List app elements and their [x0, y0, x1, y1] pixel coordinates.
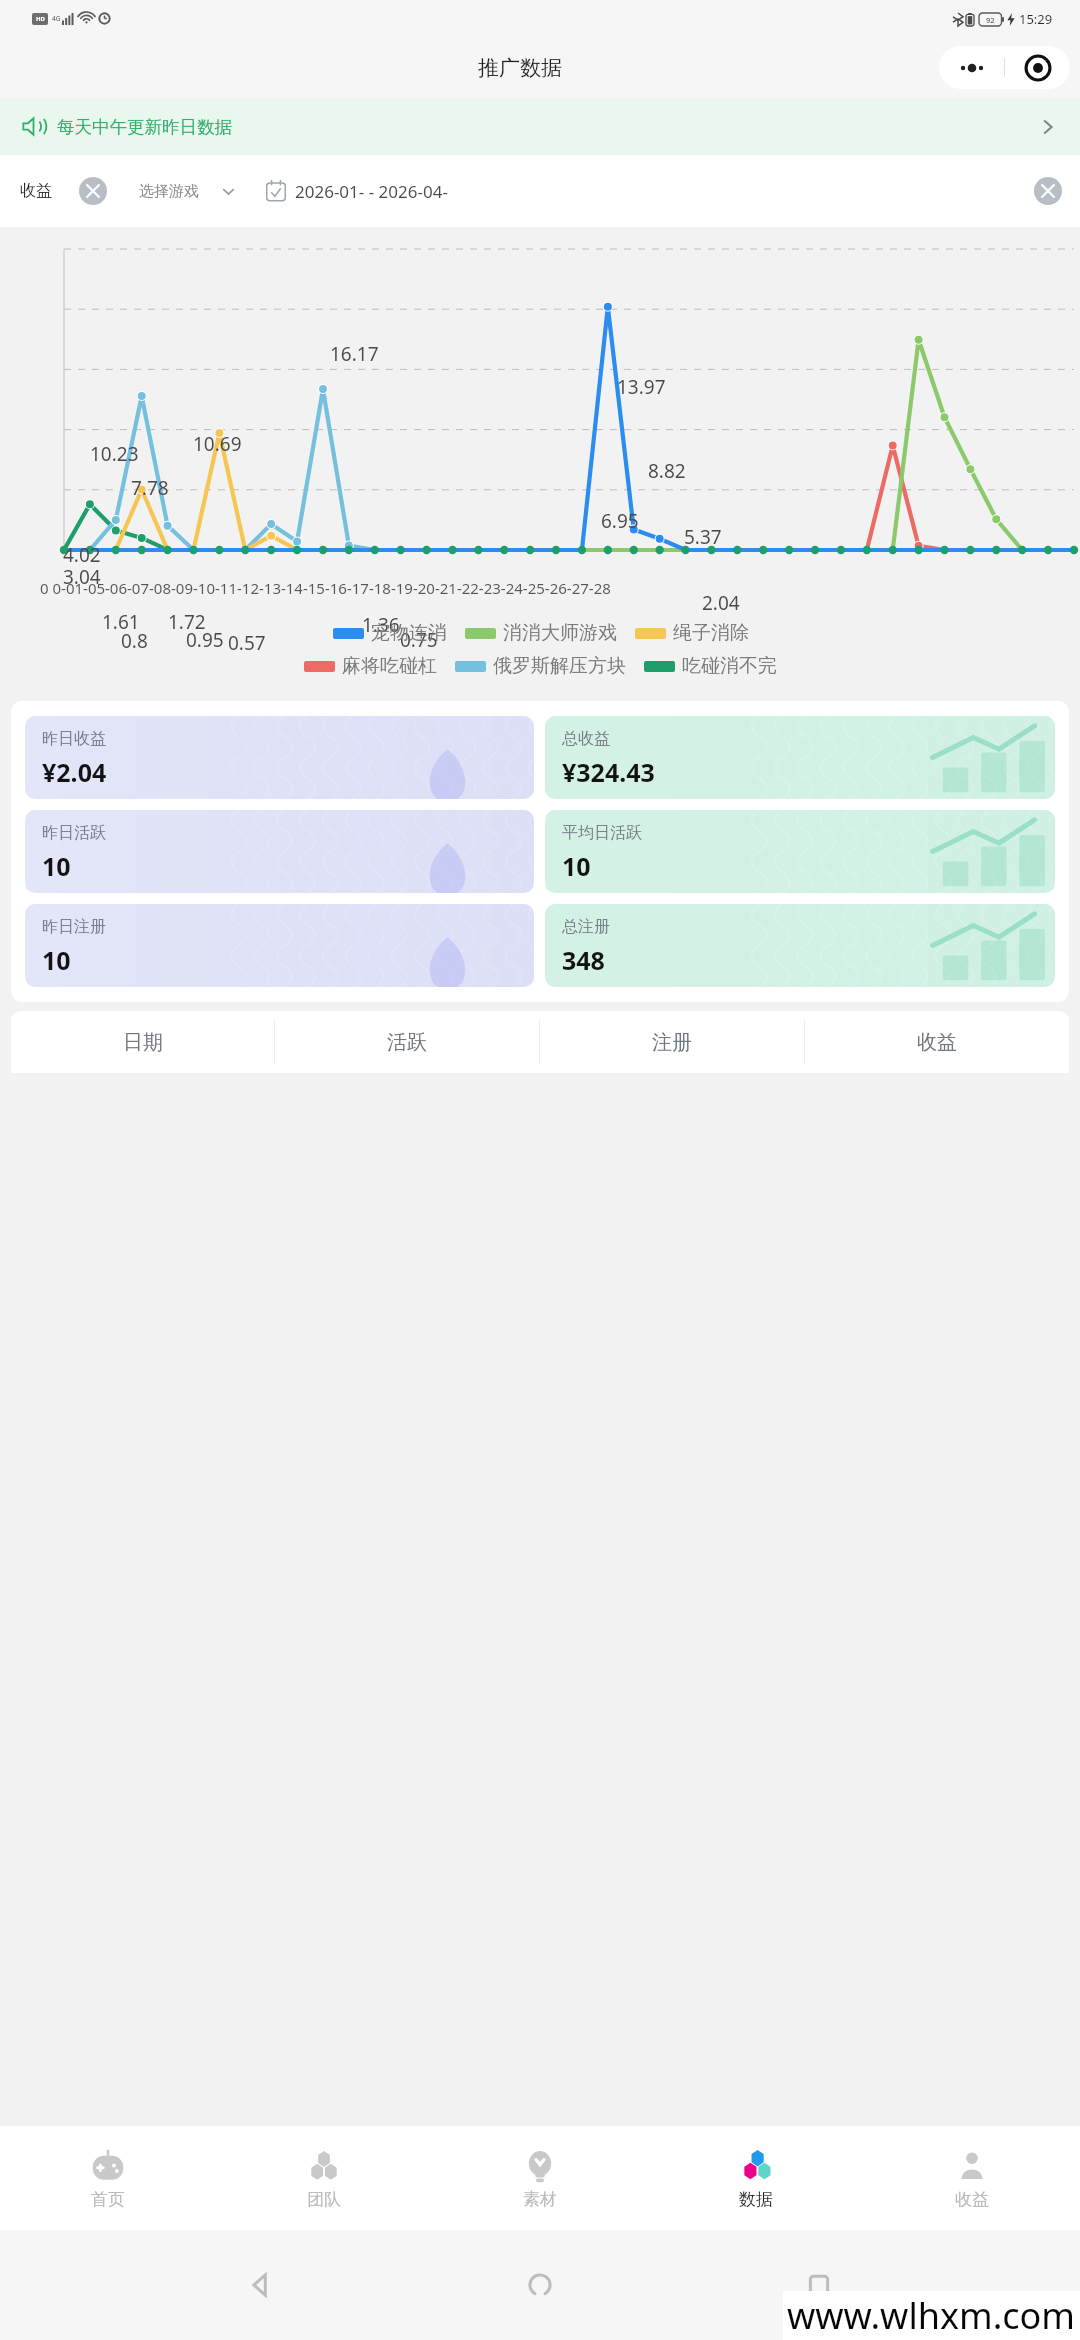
- staticText: 昨日注册: [42, 917, 106, 937]
- button[interactable]: Target: [1005, 46, 1070, 89]
- staticText: 1.61: [102, 609, 140, 635]
- staticText: 2.04: [702, 590, 740, 616]
- staticText: 总注册: [562, 917, 610, 937]
- staticText: 数据: [739, 2189, 773, 2210]
- staticText: 麻将吃碰杠: [342, 654, 437, 678]
- button[interactable]: 吃碰消不完: [644, 654, 777, 678]
- staticText: 1.72: [168, 609, 206, 635]
- staticText: 昨日收益: [42, 729, 106, 749]
- button[interactable]: 收益: [7, 165, 120, 217]
- staticText: 收益: [20, 181, 52, 201]
- button[interactable]: 活跃: [275, 1011, 539, 1073]
- staticText: 0.75: [400, 627, 438, 653]
- button[interactable]: Home: [522, 2267, 558, 2303]
- staticText: 8.82: [648, 458, 686, 484]
- staticText: 日期: [123, 1030, 163, 1055]
- button[interactable]: 团队: [216, 2126, 432, 2230]
- staticText: www.wlhxm.com: [787, 2291, 1076, 2340]
- staticText: 推广数据: [478, 55, 562, 81]
- button[interactable]: 俄罗斯解压方块: [455, 654, 626, 678]
- staticText: 0.8: [121, 628, 148, 654]
- button[interactable]: 昨日活跃: [25, 810, 534, 893]
- button[interactable]: 宠物连消: [333, 621, 447, 645]
- staticText: 收益: [917, 1030, 957, 1055]
- button[interactable]: 注册: [540, 1011, 804, 1073]
- staticText: 收益: [955, 2189, 989, 2210]
- button[interactable]: 收益: [805, 1011, 1069, 1073]
- staticText: 7.78: [131, 475, 169, 501]
- staticText: 2026-01- - 2026-04-: [295, 180, 448, 203]
- staticText: 绳子消除: [673, 621, 749, 645]
- staticText: 0.95: [186, 627, 224, 653]
- staticText: 俄罗斯解压方块: [493, 654, 626, 678]
- button[interactable]: Clear: [79, 177, 107, 205]
- button[interactable]: 消消大师游戏: [465, 621, 617, 645]
- staticText: 首页: [91, 2189, 125, 2210]
- staticText: 10: [562, 849, 591, 883]
- button[interactable]: 总收益: [545, 716, 1055, 799]
- staticText: 注册: [652, 1030, 692, 1055]
- staticText: 10.23: [90, 441, 139, 467]
- button[interactable]: 首页: [0, 2126, 216, 2230]
- button[interactable]: 麻将吃碰杠: [304, 654, 437, 678]
- staticText: 92: [986, 15, 995, 25]
- button[interactable]: Clear: [1034, 177, 1062, 205]
- staticText: 昨日活跃: [42, 823, 106, 843]
- staticText: 团队: [307, 2189, 341, 2210]
- button[interactable]: 2026-01- - 2026-04-: [254, 165, 1073, 217]
- staticText: 15:29: [1019, 10, 1053, 28]
- staticText: HD: [36, 15, 45, 23]
- staticText: 4G: [52, 14, 61, 23]
- staticText: 选择游戏: [139, 182, 199, 201]
- staticText: 活跃: [387, 1030, 427, 1055]
- button[interactable]: 日期: [11, 1011, 274, 1073]
- staticText: 1.36: [362, 612, 400, 638]
- staticText: 10: [42, 849, 71, 883]
- button[interactable]: 绳子消除: [635, 621, 749, 645]
- button[interactable]: [0, 227, 1080, 690]
- staticText: 吃碰消不完: [682, 654, 777, 678]
- button[interactable]: More options: [939, 46, 1004, 89]
- button[interactable]: 素材: [432, 2126, 648, 2230]
- staticText: 10: [42, 943, 71, 977]
- button[interactable]: 收益: [864, 2126, 1080, 2230]
- button[interactable]: Recents: [801, 2267, 837, 2303]
- staticText: 16.17: [330, 341, 379, 367]
- button[interactable]: 平均日活跃: [545, 810, 1055, 893]
- staticText: 5.37: [684, 524, 722, 550]
- staticText: 0.57: [228, 630, 266, 656]
- staticText: 平均日活跃: [562, 823, 642, 843]
- staticText: ¥2.04: [42, 755, 107, 789]
- staticText: 4.02: [63, 542, 101, 568]
- staticText: 素材: [523, 2189, 557, 2210]
- staticText: 6.95: [601, 508, 639, 534]
- staticText: ¥324.43: [562, 755, 655, 789]
- button[interactable]: 昨日收益: [25, 716, 534, 799]
- staticText: 总收益: [562, 729, 610, 749]
- staticText: 3.04: [63, 564, 101, 590]
- button[interactable]: 数据: [648, 2126, 864, 2230]
- staticText: 每天中午更新昨日数据: [57, 116, 232, 138]
- staticText: 13.97: [617, 374, 666, 400]
- button[interactable]: 每天中午更新昨日数据: [0, 98, 1080, 155]
- staticText: 消消大师游戏: [503, 621, 617, 645]
- button[interactable]: 总注册: [545, 904, 1055, 987]
- button[interactable]: 选择游戏: [127, 165, 247, 217]
- staticText: 0 0-01-05-06-07-08-09-10-11-12-13-14-15-…: [40, 578, 611, 598]
- staticText: 10.69: [193, 431, 242, 457]
- button[interactable]: Back: [243, 2267, 279, 2303]
- button[interactable]: 昨日注册: [25, 904, 534, 987]
- staticText: 宠物连消: [371, 621, 447, 645]
- staticText: 348: [562, 943, 605, 977]
